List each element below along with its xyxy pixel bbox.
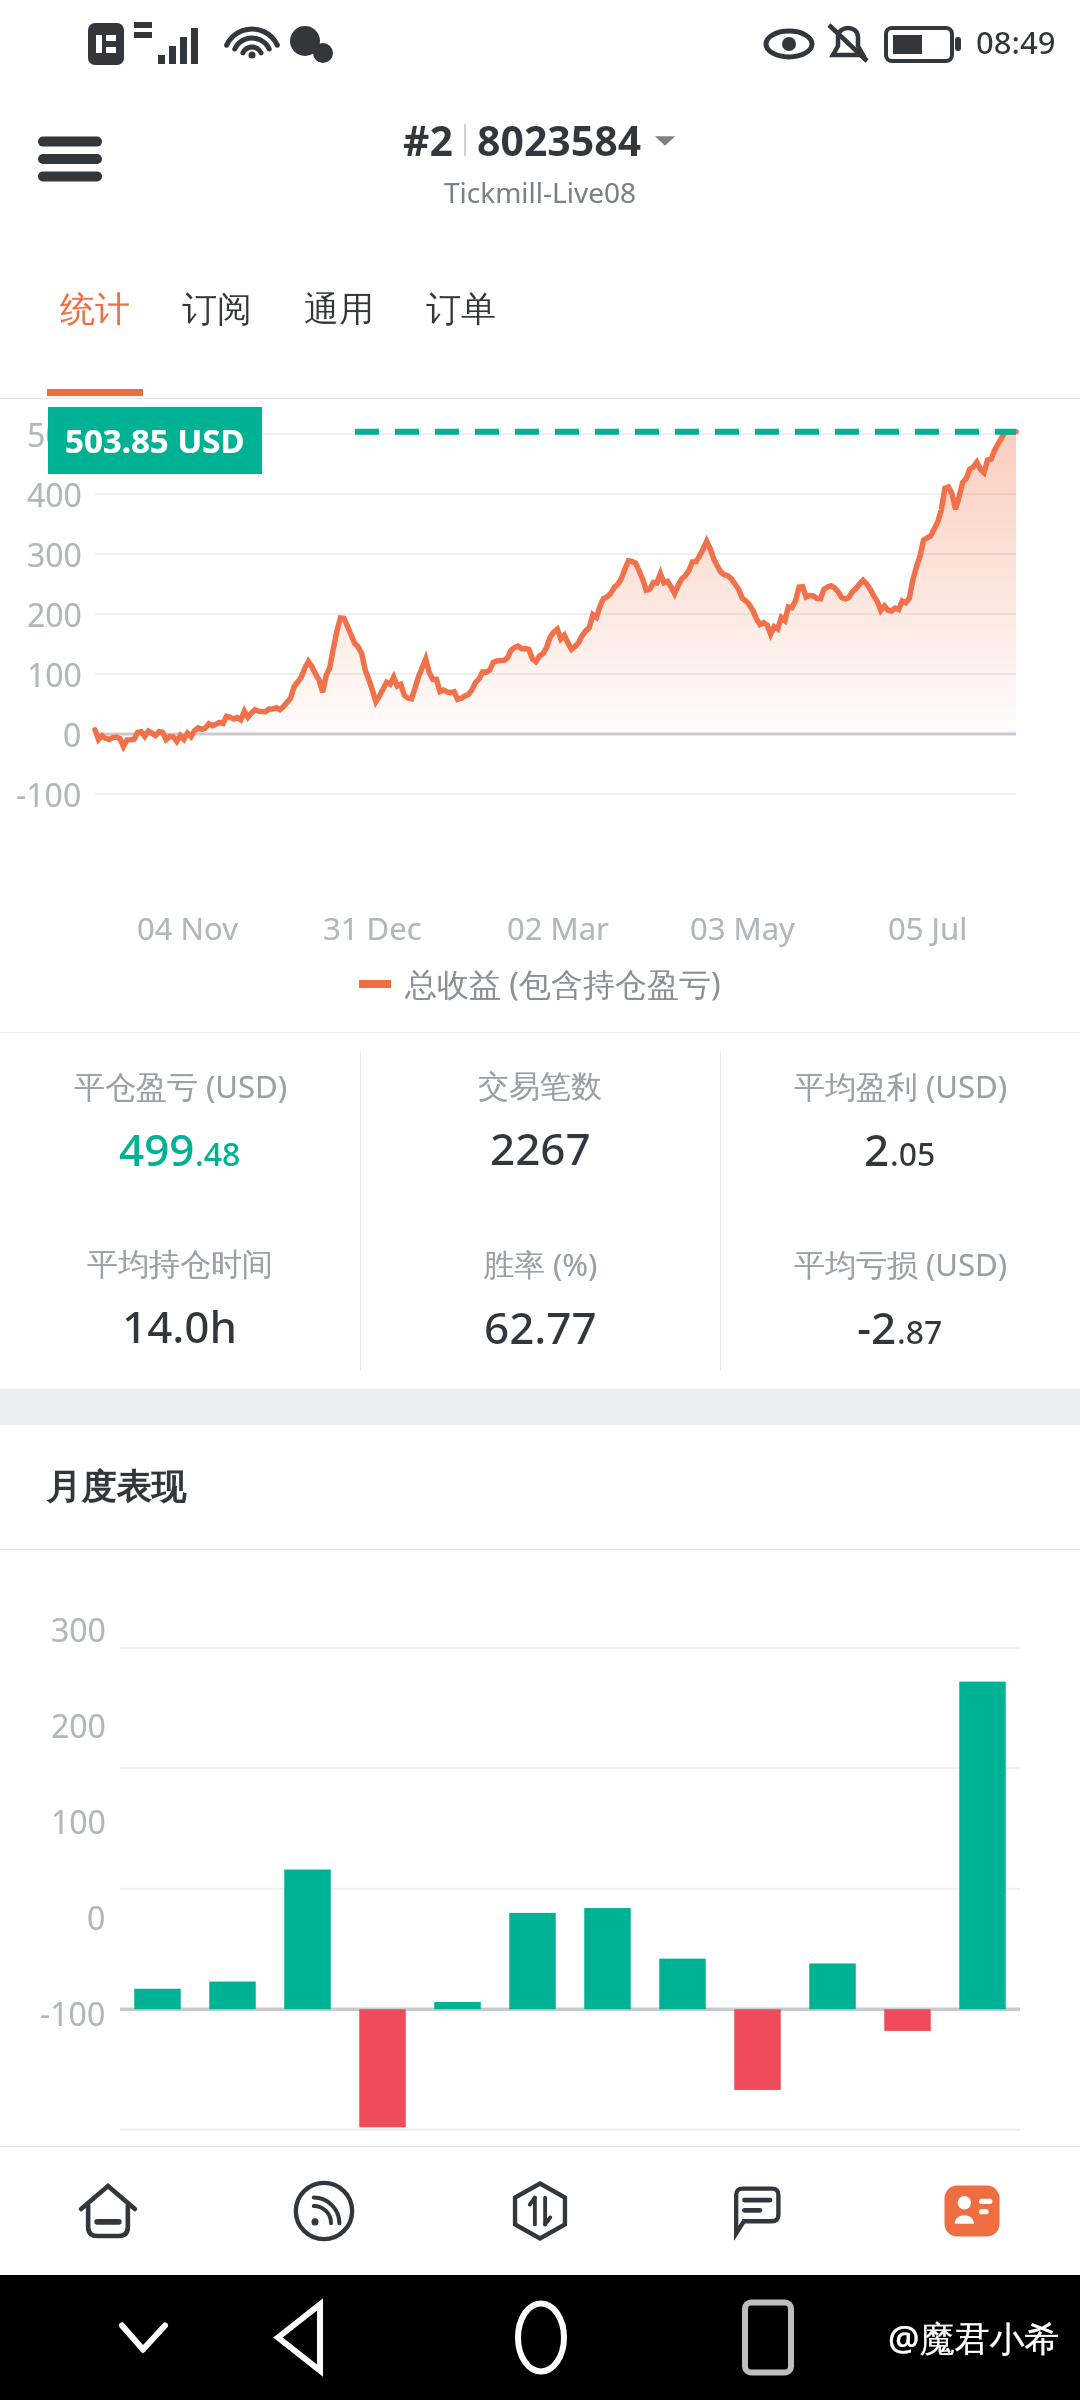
staticText: 月度表现: [46, 1465, 186, 1509]
staticText: 0: [87, 1896, 106, 1940]
staticText: 平均持仓时间: [87, 1245, 273, 1284]
staticText: #2: [403, 112, 453, 168]
staticText: 31 Dec: [323, 907, 422, 949]
staticText: 2: [864, 1119, 890, 1179]
staticText: 08:49: [976, 21, 1056, 63]
button[interactable]: 平均盈利 (USD): [720, 1033, 1080, 1211]
staticText: @魔君小希: [888, 2314, 1060, 2362]
button[interactable]: Profile: [864, 2147, 1080, 2275]
staticText: 交易笔数: [478, 1067, 602, 1106]
staticText: 62.77: [484, 1297, 597, 1357]
button[interactable]: 503.85 USD: [48, 407, 262, 474]
staticText: 100: [27, 653, 82, 697]
staticText: 300: [51, 1608, 106, 1652]
staticText: 胜率 (%): [483, 1243, 598, 1285]
button[interactable]: 通用: [278, 238, 400, 398]
staticText: 总收益 (包含持仓盈亏): [405, 962, 721, 1006]
staticText: -2: [857, 1297, 897, 1357]
button[interactable]: 胜率 (%): [360, 1211, 720, 1389]
staticText: .48: [195, 1132, 241, 1176]
button[interactable]: 平仓盈亏 (USD): [0, 1033, 360, 1211]
staticText: 300: [27, 533, 82, 577]
button[interactable]: 订单: [400, 238, 522, 398]
staticText: 订单: [426, 287, 496, 331]
staticText: 500: [27, 413, 82, 457]
staticText: 400: [27, 473, 82, 517]
button[interactable]: 平均持仓时间: [0, 1211, 360, 1389]
staticText: 04 Nov: [137, 907, 238, 949]
button[interactable]: Home: [0, 2147, 216, 2275]
staticText: 02 Mar: [507, 907, 609, 949]
button[interactable]: #2: [403, 112, 677, 211]
button[interactable]: Trade: [432, 2147, 648, 2275]
staticText: 2267: [490, 1118, 591, 1178]
staticText: 0: [63, 713, 82, 757]
button[interactable]: 统计: [34, 238, 156, 398]
staticText: 05 Jul: [888, 907, 968, 949]
button[interactable]: 月度表现: [0, 1425, 1080, 1549]
staticText: 订阅: [182, 287, 252, 331]
button[interactable]: Signals: [216, 2147, 432, 2275]
staticText: .05: [890, 1132, 936, 1176]
button[interactable]: Chat: [648, 2147, 864, 2275]
staticText: -100: [16, 773, 82, 817]
staticText: .87: [897, 1310, 943, 1354]
staticText: 统计: [60, 287, 130, 331]
staticText: 200: [27, 593, 82, 637]
staticText: Tickmill-Live08: [444, 173, 636, 211]
button[interactable]: Menu: [20, 109, 120, 209]
staticText: 平仓盈亏 (USD): [74, 1065, 287, 1107]
staticText: 100: [51, 1800, 106, 1844]
button[interactable]: 交易笔数: [360, 1033, 720, 1211]
staticText: -100: [40, 1992, 106, 2036]
button[interactable]: 订阅: [156, 238, 278, 398]
button[interactable]: 平均亏损 (USD): [720, 1211, 1080, 1389]
staticText: 200: [51, 1704, 106, 1748]
staticText: 平均盈利 (USD): [794, 1065, 1007, 1107]
staticText: 8023584: [477, 112, 642, 168]
staticText: 499: [119, 1119, 195, 1179]
staticText: 14.0h: [122, 1296, 238, 1356]
staticText: 通用: [304, 287, 374, 331]
staticText: 503.85 USD: [65, 418, 245, 463]
staticText: 平均亏损 (USD): [794, 1243, 1007, 1285]
staticText: 03 May: [690, 907, 795, 949]
